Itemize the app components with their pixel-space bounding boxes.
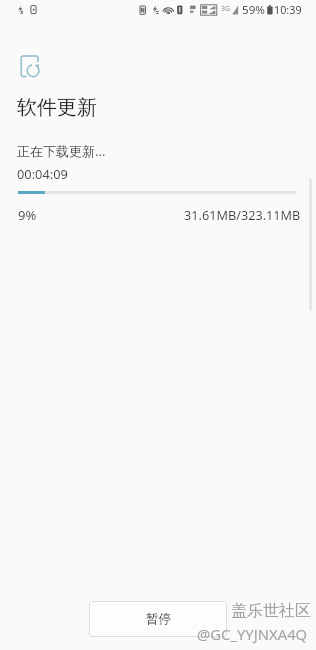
- staticText: 软件更新: [17, 95, 97, 120]
- staticText: 9%: [18, 206, 37, 224]
- staticText: 正在下载更新...: [17, 142, 106, 160]
- staticText: 31.61MB/323.11MB: [184, 206, 301, 223]
- other: Software update: [18, 53, 42, 79]
- staticText: 暂停: [146, 611, 171, 627]
- staticText: 10:39: [274, 2, 302, 17]
- staticText: @GC_YYJNXA4Q: [197, 624, 308, 644]
- button[interactable]: 暂停: [89, 601, 227, 637]
- staticText: 盖乐世社区: [231, 601, 311, 621]
- staticText: 59%: [242, 2, 265, 18]
- staticText: 3G: [221, 4, 231, 14]
- staticText: 00:04:09: [17, 165, 68, 182]
